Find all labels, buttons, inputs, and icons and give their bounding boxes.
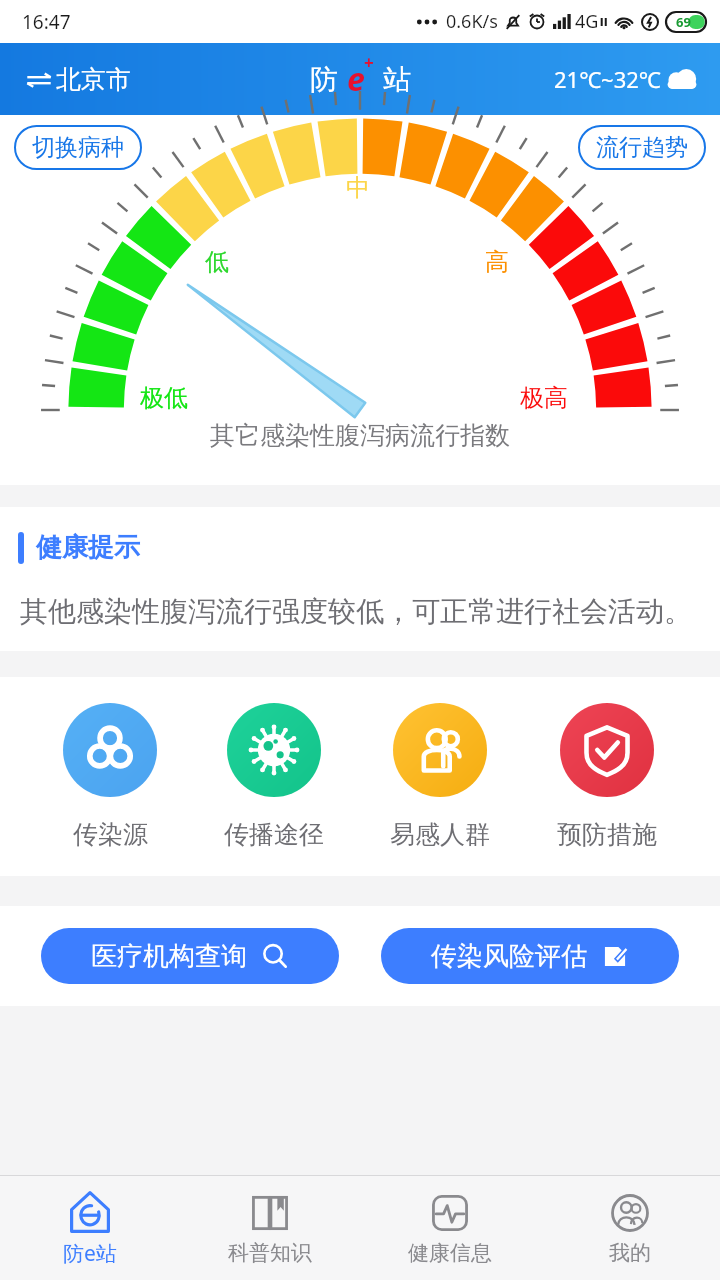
staticText: 极低	[140, 383, 188, 413]
staticText: 传播途径	[224, 819, 324, 850]
staticText: 69	[676, 13, 691, 31]
staticText: 预防措施	[557, 819, 657, 850]
button[interactable]: 传染风险评估	[381, 928, 679, 984]
staticText: 极高	[520, 383, 568, 413]
staticText: 16:47	[22, 9, 71, 35]
staticText: 防e站	[63, 1239, 117, 1268]
button[interactable]: 我的	[540, 1176, 720, 1280]
staticText: 我的	[609, 1240, 651, 1266]
button[interactable]: 切换病种	[14, 125, 142, 170]
button[interactable]: 传播途径	[220, 699, 328, 854]
button[interactable]: 易感人群	[386, 699, 494, 854]
button[interactable]: 流行趋势	[578, 125, 706, 170]
staticText: e	[347, 57, 365, 101]
button[interactable]: 预防措施	[553, 699, 661, 854]
staticText: 防	[310, 62, 338, 97]
staticText: 低	[205, 247, 229, 277]
staticText: 北京市	[56, 64, 131, 95]
staticText: 切换病种	[32, 133, 124, 162]
staticText: 21℃~32℃	[554, 64, 661, 94]
button[interactable]: 传染源	[59, 699, 161, 854]
staticText: 易感人群	[390, 819, 490, 850]
staticText: 其它感染性腹泻病流行指数	[210, 420, 510, 451]
staticText: 0.6K/s	[446, 9, 498, 34]
staticText: 健康提示	[36, 531, 140, 564]
button[interactable]: 21℃~32℃	[550, 60, 704, 98]
staticText: 传染源	[73, 819, 148, 850]
staticText: 科普知识	[228, 1240, 312, 1266]
staticText: 传染风险评估	[431, 940, 587, 973]
staticText: +	[364, 51, 374, 74]
button[interactable]: 医疗机构查询	[41, 928, 339, 984]
staticText: 健康信息	[408, 1240, 492, 1266]
staticText: 中	[346, 173, 370, 203]
staticText: 高	[485, 247, 509, 277]
staticText: 站	[383, 62, 411, 97]
staticText: 流行趋势	[596, 133, 688, 162]
button[interactable]: 防e站	[0, 1176, 180, 1280]
staticText: 4G	[575, 9, 599, 34]
button[interactable]: 科普知识	[180, 1176, 360, 1280]
button[interactable]: 健康信息	[360, 1176, 540, 1280]
button[interactable]: 北京市	[20, 58, 137, 101]
staticText: 其他感染性腹泻流行强度较低，可正常进行社会活动。	[20, 594, 692, 629]
staticText: 医疗机构查询	[91, 940, 247, 973]
